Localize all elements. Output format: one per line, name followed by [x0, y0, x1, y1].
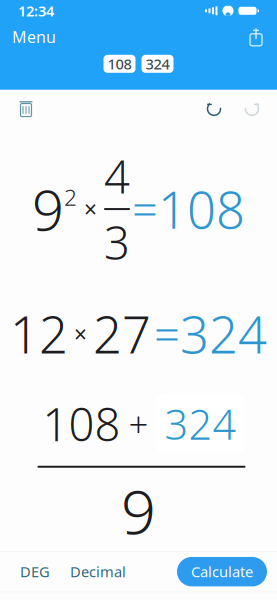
- staticText: 12:34: [18, 1, 54, 21]
- staticText: 9: [32, 172, 64, 246]
- button[interactable]: Delete: [6, 94, 46, 124]
- button[interactable]: 324: [141, 55, 173, 73]
- staticText: =: [132, 179, 158, 239]
- button[interactable]: Calculate: [177, 557, 267, 586]
- staticText: 108: [107, 54, 131, 74]
- button[interactable]: Redo: [233, 94, 271, 124]
- button[interactable]: Decimal: [60, 554, 136, 589]
- staticText: 108: [158, 175, 245, 243]
- staticText: 3: [104, 212, 130, 272]
- button[interactable]: Undo: [195, 94, 233, 124]
- staticText: 108: [42, 393, 120, 454]
- staticText: 324: [180, 300, 267, 367]
- staticText: 27: [93, 300, 151, 367]
- button[interactable]: 108: [103, 55, 135, 73]
- staticText: Menu: [12, 26, 56, 47]
- button[interactable]: Share: [235, 23, 277, 51]
- button[interactable]: DEG: [10, 554, 60, 589]
- staticText: 324: [164, 396, 236, 451]
- button[interactable]: Menu: [0, 20, 68, 53]
- staticText: 4: [104, 146, 130, 206]
- staticText: ×: [74, 319, 87, 349]
- staticText: ×: [84, 194, 97, 224]
- staticText: 2: [64, 182, 77, 212]
- staticText: +: [128, 401, 148, 447]
- staticText: 12: [10, 300, 68, 367]
- staticText: DEG: [20, 562, 50, 581]
- staticText: =: [154, 304, 180, 364]
- staticText: Decimal: [70, 562, 126, 581]
- staticText: 9: [121, 470, 156, 551]
- staticText: 324: [145, 54, 169, 74]
- staticText: Calculate: [191, 562, 253, 581]
- button[interactable]: 324: [156, 394, 244, 453]
